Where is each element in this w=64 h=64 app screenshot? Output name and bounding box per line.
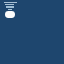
button[interactable] [5,11,15,18]
